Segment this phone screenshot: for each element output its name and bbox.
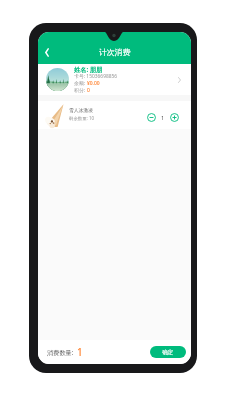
button[interactable]: 确定 xyxy=(150,346,186,358)
staticText: ¥0.00 xyxy=(87,80,100,87)
button[interactable]: Decrease quantity xyxy=(146,112,157,123)
staticText: 0 xyxy=(87,87,90,94)
staticText: 余额: xyxy=(74,80,87,87)
staticText: 计次消费 xyxy=(99,47,131,57)
staticText: 卡号: 15036698856 xyxy=(74,73,118,80)
button[interactable]: Increase quantity xyxy=(169,112,180,123)
button[interactable]: 姓名: 朋朋 xyxy=(38,64,191,95)
staticText: 剩余数量: 10 xyxy=(69,115,94,121)
staticText: 积分: xyxy=(74,87,87,94)
button[interactable]: Back xyxy=(39,45,55,59)
staticText: 确定 xyxy=(162,349,174,356)
staticText: 姓名: 朋朋 xyxy=(74,65,103,73)
staticText: 消费数量: xyxy=(47,348,74,356)
staticText: 雪人冰激凌 xyxy=(69,107,93,113)
staticText: 1 xyxy=(77,345,83,359)
staticText: 1 xyxy=(161,114,165,122)
